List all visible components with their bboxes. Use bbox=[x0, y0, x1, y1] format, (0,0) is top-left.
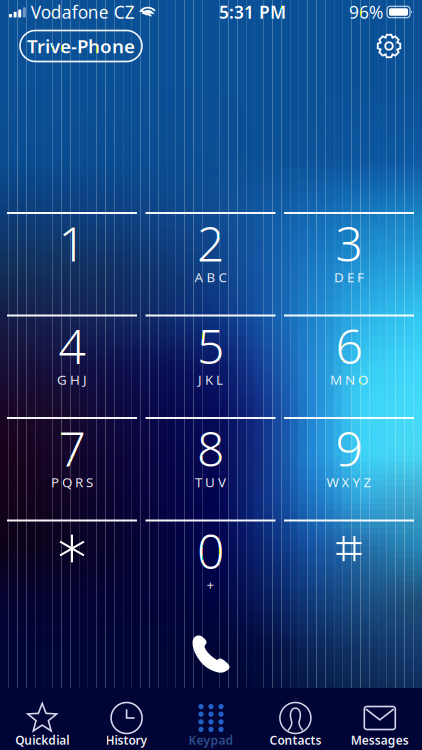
staticText: 5:31 PM bbox=[219, 0, 286, 23]
button[interactable]: Messages bbox=[338, 688, 422, 750]
staticText: MNO bbox=[330, 371, 368, 388]
button[interactable]: 6 bbox=[284, 314, 414, 417]
button[interactable]: 8 bbox=[145, 417, 275, 519]
staticText: 2 bbox=[197, 211, 224, 275]
button[interactable]: Trive-Phone bbox=[20, 30, 142, 61]
staticText: 3 bbox=[335, 211, 362, 275]
button[interactable]: 7 bbox=[7, 417, 137, 519]
staticText: History bbox=[106, 732, 148, 748]
staticText: 7 bbox=[58, 416, 85, 480]
staticText: TUV bbox=[195, 473, 226, 491]
button[interactable]: 3 bbox=[284, 212, 414, 314]
button[interactable]: Quickdial bbox=[0, 688, 84, 750]
button[interactable]: Settings bbox=[369, 26, 409, 66]
staticText: 1 bbox=[58, 211, 85, 275]
staticText: 8 bbox=[197, 416, 224, 480]
staticText: ABC bbox=[194, 268, 226, 286]
button[interactable]: 0 bbox=[145, 519, 275, 622]
staticText: GHJ bbox=[57, 371, 87, 388]
staticText: 6 bbox=[335, 314, 362, 377]
button[interactable]: 9 bbox=[284, 417, 414, 519]
button[interactable]: History bbox=[84, 688, 169, 750]
staticText: WXYZ bbox=[326, 473, 371, 491]
staticText: 0 bbox=[197, 519, 224, 582]
staticText: Contacts bbox=[269, 732, 321, 748]
button[interactable]: Star bbox=[7, 519, 137, 622]
staticText: Messages bbox=[351, 732, 409, 748]
staticText: JKL bbox=[198, 371, 223, 388]
button[interactable]: Pound bbox=[284, 519, 414, 622]
staticText: Quickdial bbox=[15, 732, 69, 748]
staticText: PQRS bbox=[51, 473, 93, 491]
staticText: 5 bbox=[197, 314, 224, 377]
staticText: Keypad bbox=[188, 732, 233, 748]
button[interactable]: Call bbox=[175, 622, 247, 686]
button[interactable]: 2 bbox=[145, 212, 275, 314]
staticText: 9 bbox=[335, 416, 362, 480]
button[interactable]: 4 bbox=[7, 314, 137, 417]
staticText: + bbox=[206, 576, 214, 593]
button[interactable]: Contacts bbox=[253, 688, 338, 750]
staticText: Vodafone CZ bbox=[31, 0, 135, 23]
button[interactable]: Keypad bbox=[169, 688, 253, 750]
staticText: DEF bbox=[334, 268, 364, 286]
staticText: 96% bbox=[349, 0, 383, 23]
staticText: Trive-Phone bbox=[27, 34, 135, 58]
button[interactable]: 5 bbox=[145, 314, 275, 417]
staticText: 4 bbox=[58, 314, 85, 377]
button[interactable]: 1 bbox=[7, 212, 137, 314]
